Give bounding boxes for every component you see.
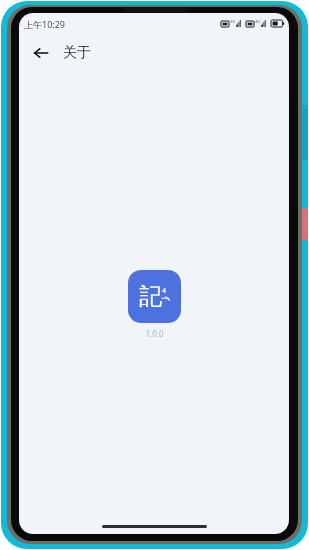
staticText: 1.0.0 xyxy=(145,328,164,339)
button[interactable]: Back xyxy=(29,41,53,65)
staticText: 关于 xyxy=(63,44,91,62)
staticText: 4G xyxy=(255,19,261,24)
staticText: 4 xyxy=(162,286,167,296)
staticText: 5G xyxy=(230,19,236,24)
staticText: 記 xyxy=(139,282,162,311)
button[interactable]: App icon xyxy=(128,270,181,323)
staticText: 上午10:29 xyxy=(24,18,66,30)
